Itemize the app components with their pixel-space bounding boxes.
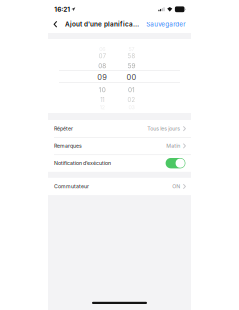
staticText: 09 xyxy=(97,73,107,82)
button[interactable]: Commutateur xyxy=(48,178,191,195)
staticText: 12 xyxy=(100,104,105,111)
staticText: 07 xyxy=(99,53,106,60)
staticText: 11 xyxy=(100,96,104,103)
button[interactable]: Retour xyxy=(48,17,65,32)
staticText: 10 xyxy=(99,86,106,94)
staticText: 59 xyxy=(127,62,135,70)
button[interactable]: Notification d'exécution xyxy=(166,158,185,168)
staticText: Ajout d'une planificati… xyxy=(65,20,139,28)
button[interactable]: Sauvegarder xyxy=(146,17,191,31)
staticText: Remarques xyxy=(54,143,82,149)
staticText: 58 xyxy=(127,53,135,60)
staticText: ON xyxy=(172,183,180,190)
staticText: 03 xyxy=(128,104,134,111)
staticText: Répéter xyxy=(54,125,73,132)
staticText: 02 xyxy=(127,96,135,103)
staticText: Notification d'exécution xyxy=(54,160,111,166)
staticText: 57 xyxy=(128,46,134,52)
staticText: Commutateur xyxy=(54,183,89,190)
staticText: 16:21 xyxy=(54,5,70,13)
button[interactable]: Remarques xyxy=(48,137,191,155)
staticText: 06 xyxy=(99,46,105,52)
staticText: Sauvegarder xyxy=(146,20,185,28)
staticText: Matin xyxy=(166,143,180,149)
staticText: 01 xyxy=(128,86,135,94)
staticText: 00 xyxy=(126,73,136,82)
button[interactable]: Répéter xyxy=(48,120,191,137)
staticText: 08 xyxy=(98,62,106,70)
staticText: Tous les jours xyxy=(147,125,180,132)
